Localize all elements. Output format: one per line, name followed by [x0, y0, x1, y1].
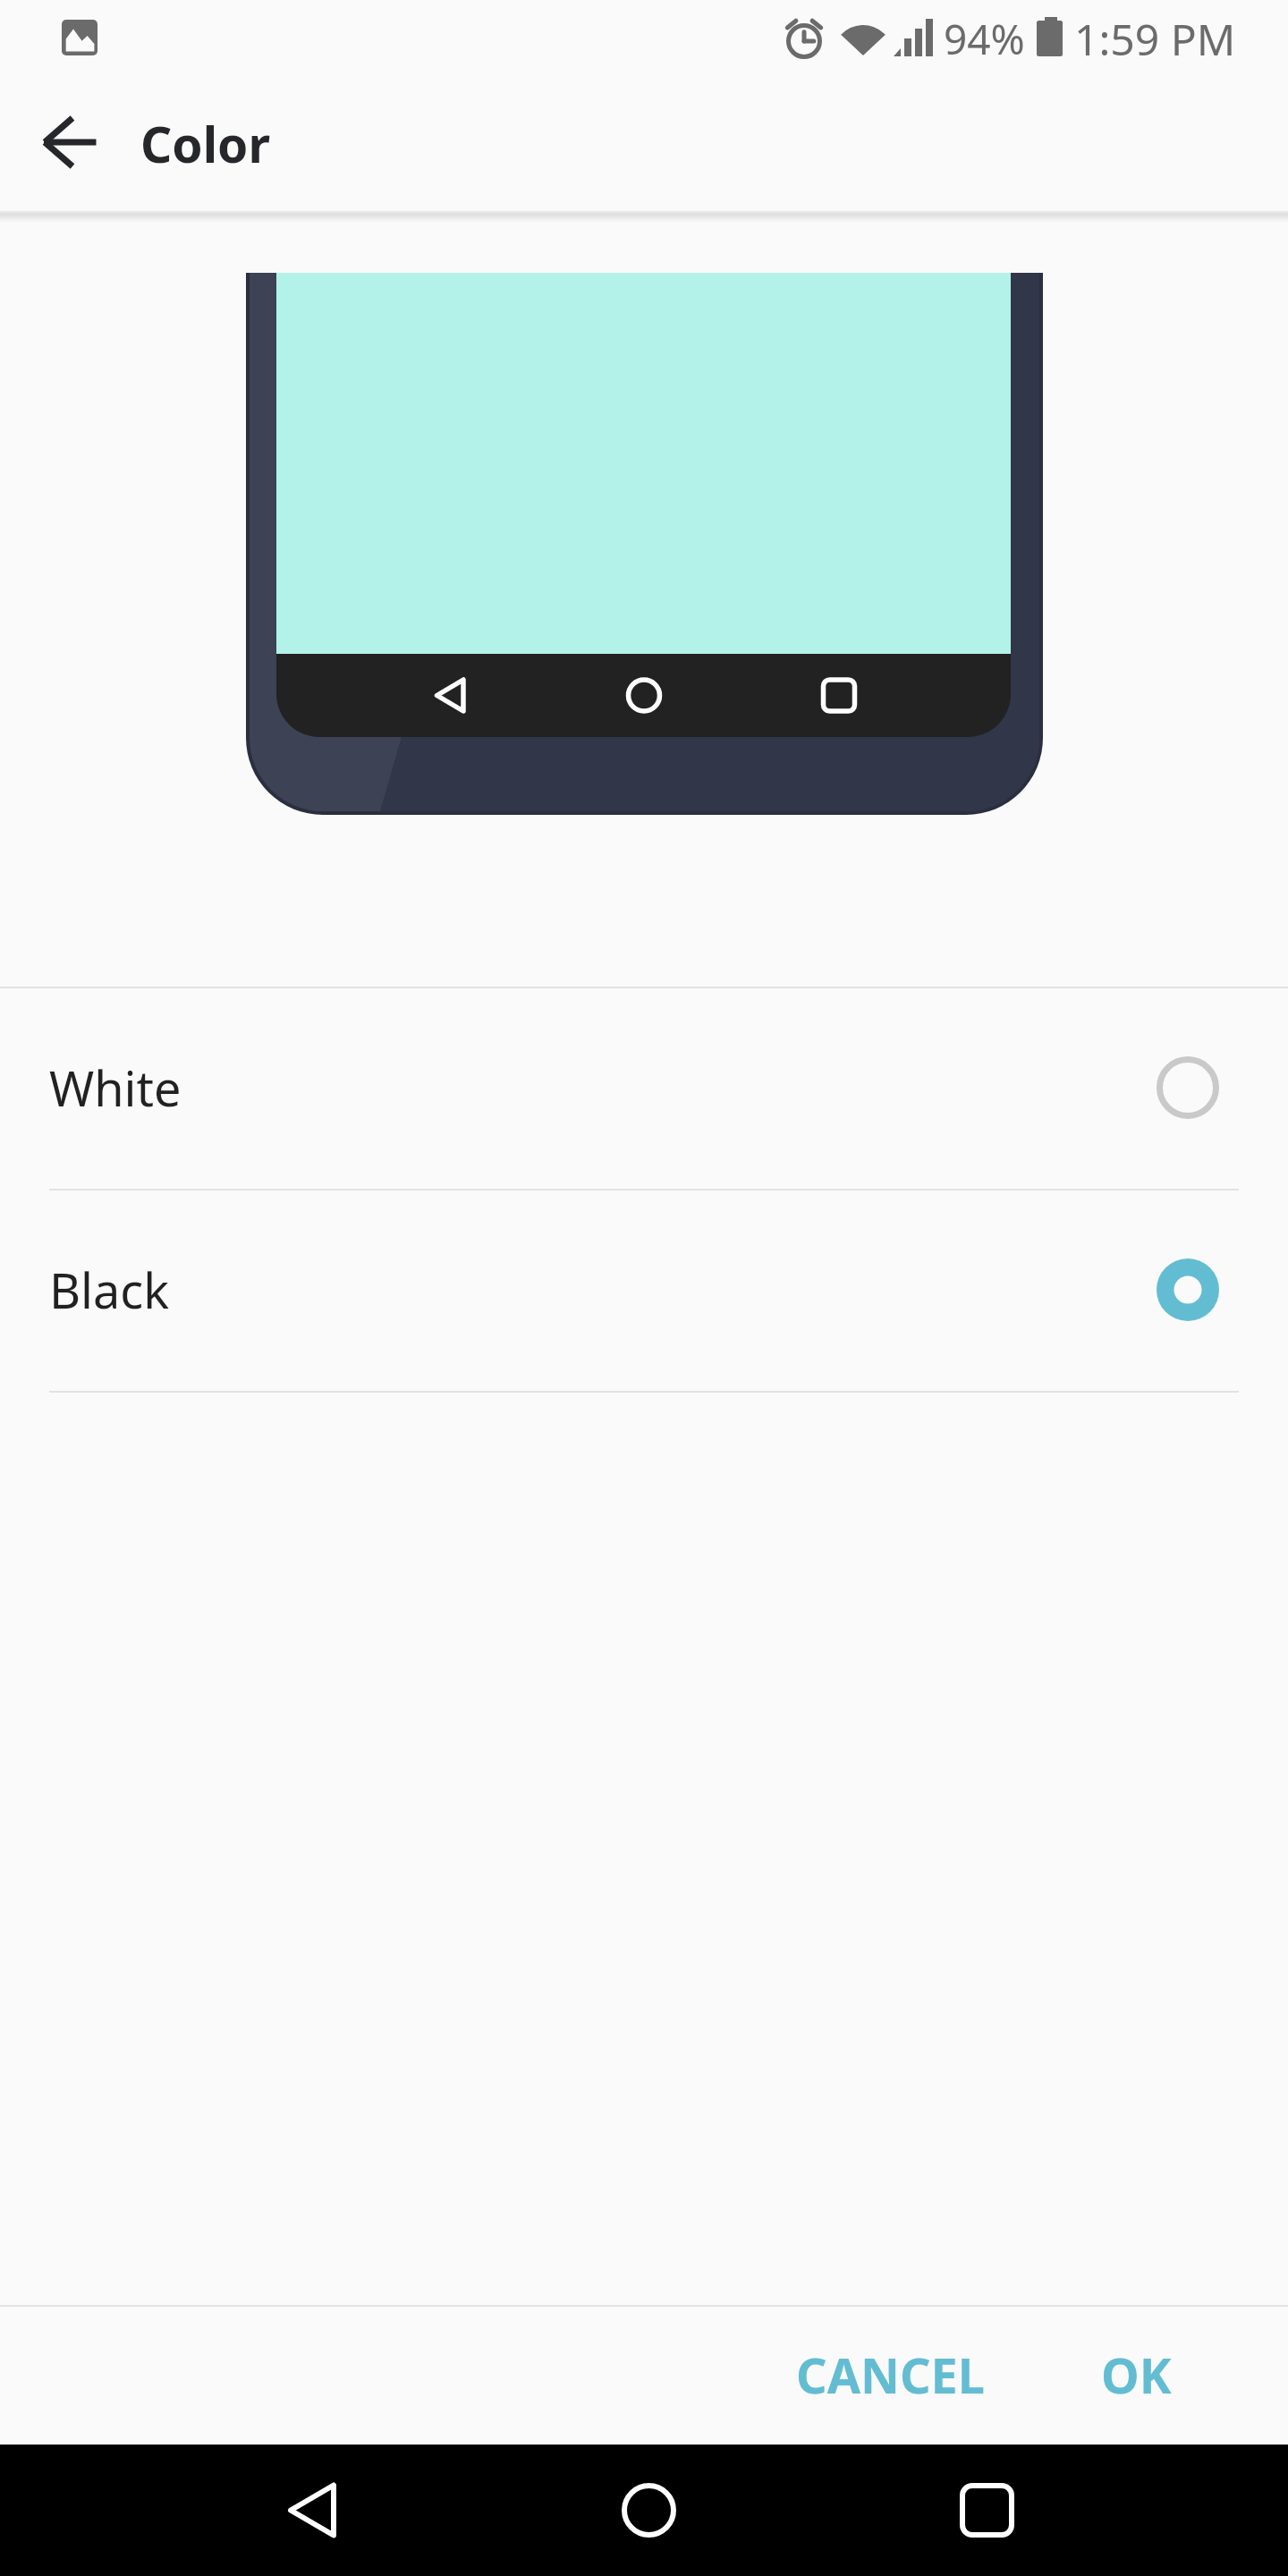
staticText: CANCEL	[796, 2342, 986, 2408]
button[interactable]: Back	[21, 95, 118, 191]
button[interactable]: CANCEL	[771, 2317, 1011, 2433]
staticText: OK	[1101, 2342, 1172, 2408]
button[interactable]: Back	[250, 2445, 378, 2576]
button[interactable]: Home	[584, 2445, 713, 2576]
button[interactable]: OK	[1076, 2317, 1197, 2433]
staticText: White	[49, 1055, 182, 1121]
staticText: Color	[140, 110, 271, 177]
button[interactable]: White	[0, 987, 1288, 1189]
button[interactable]: Recent apps	[922, 2445, 1051, 2576]
staticText: 1:59 PM	[1074, 10, 1236, 68]
staticText: Black	[49, 1257, 170, 1323]
button[interactable]: Black	[0, 1189, 1288, 1391]
staticText: 94%	[944, 11, 1025, 67]
